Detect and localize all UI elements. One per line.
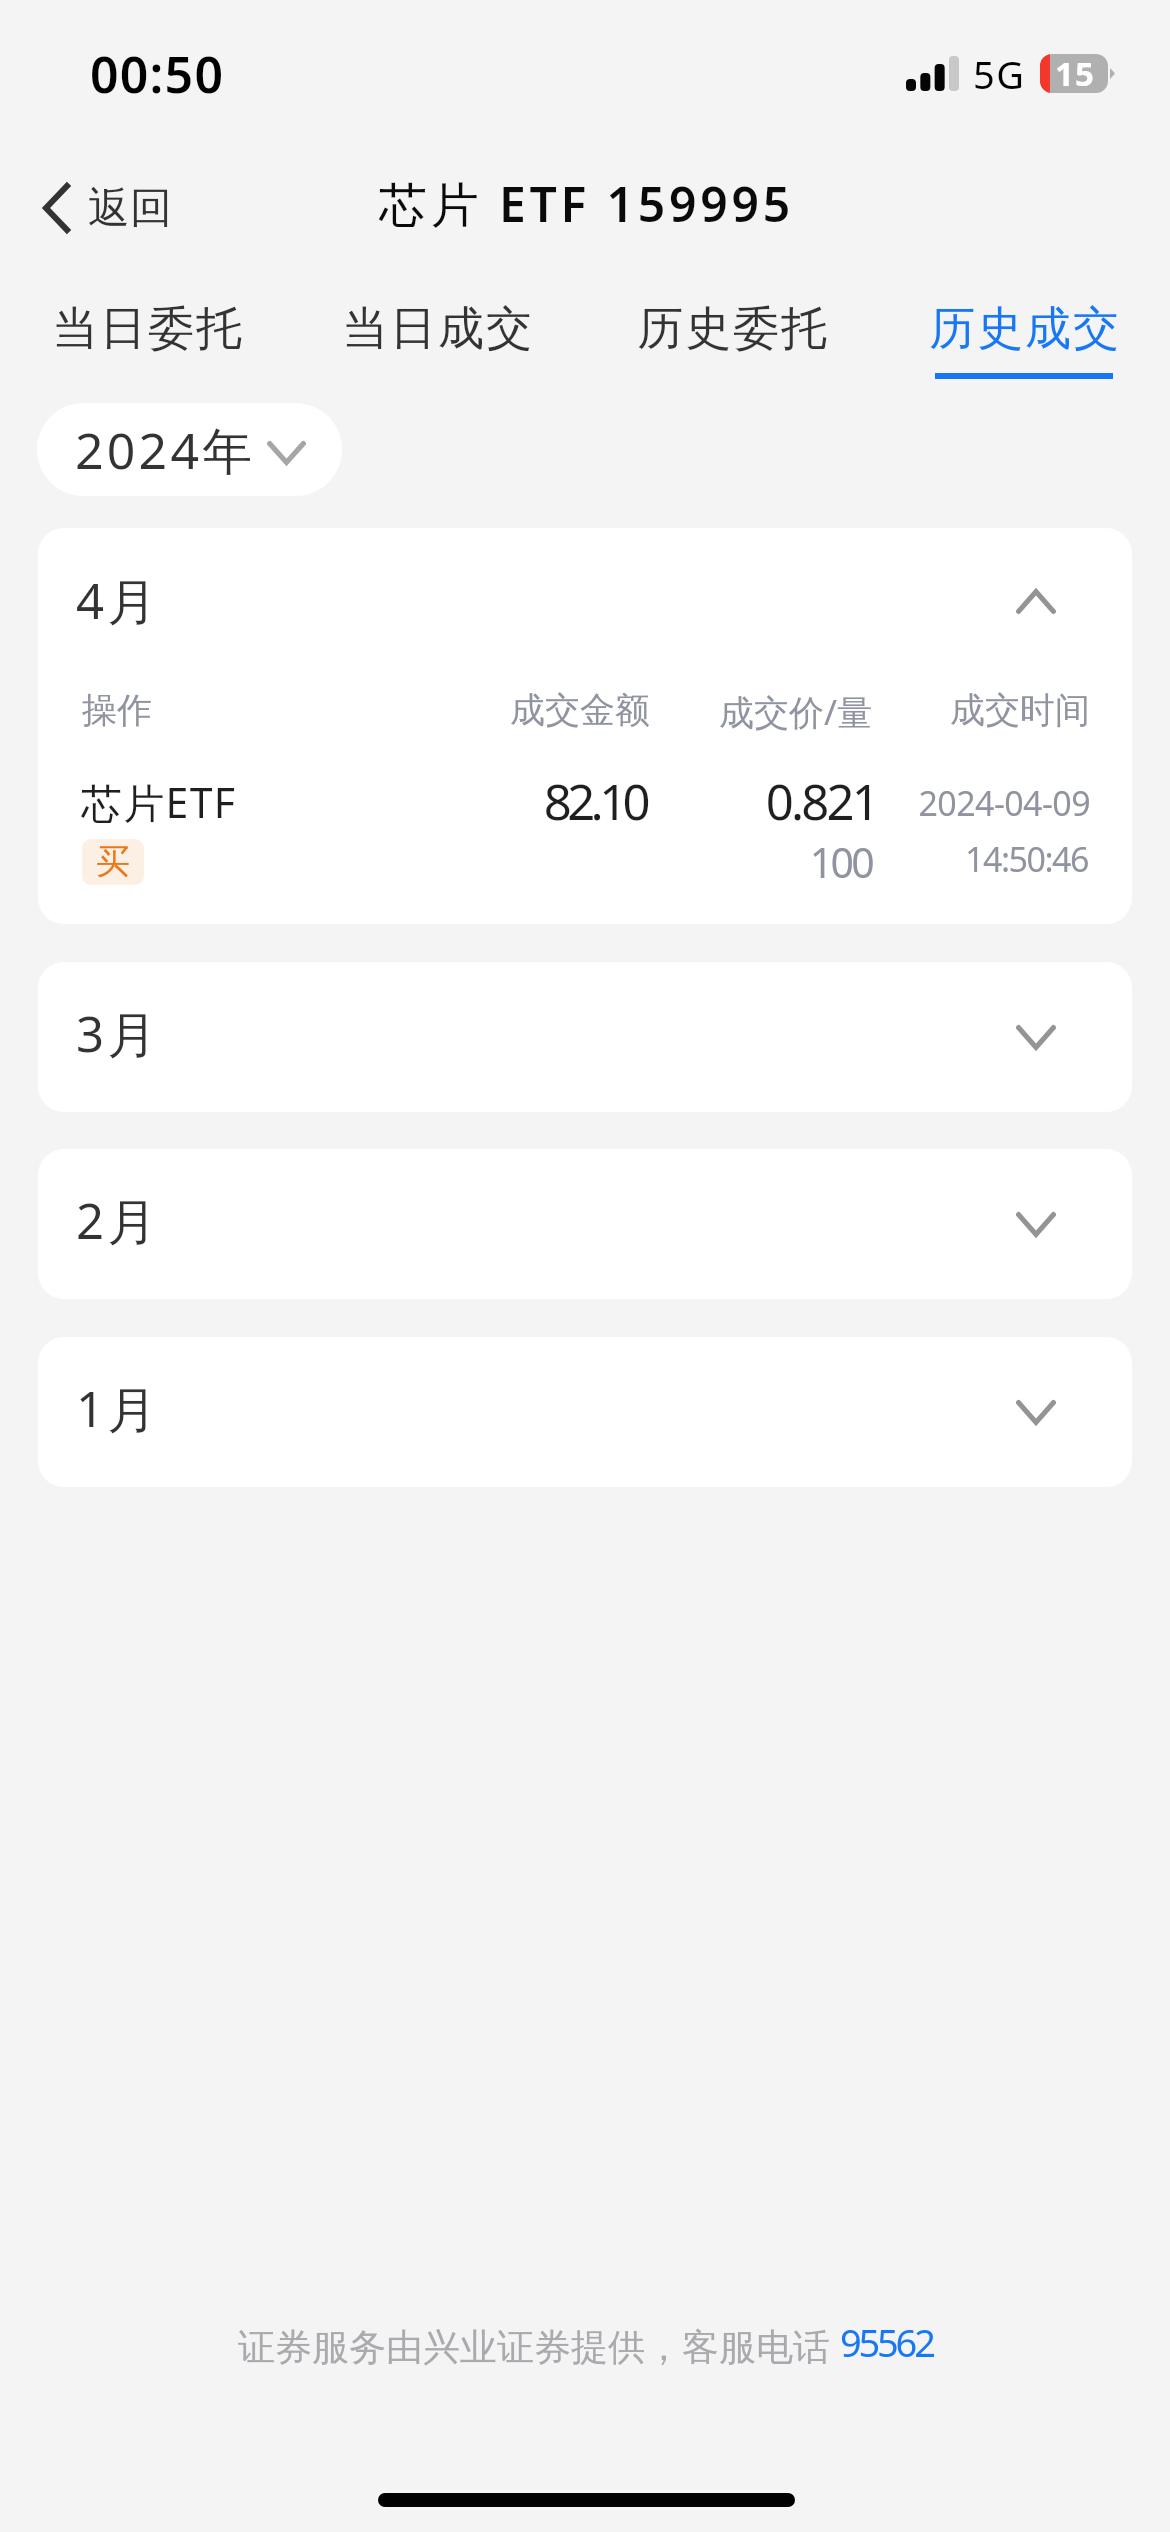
staticText: 15 <box>1055 51 1095 90</box>
staticText: 成交价/量 <box>652 688 872 736</box>
staticText: 1月 <box>76 1375 161 1442</box>
other: Back <box>43 183 70 233</box>
staticText: 14:50:46 <box>868 836 1088 882</box>
staticText: 历史成交 <box>928 300 1120 358</box>
other: Expand 1月 <box>1016 1400 1056 1425</box>
staticText: 成交金额 <box>370 688 650 732</box>
staticText: 操作 <box>82 688 152 732</box>
button[interactable]: 95562 <box>840 2316 933 2368</box>
button[interactable]: 当日委托 <box>1 276 293 386</box>
staticText: 当日成交 <box>341 300 533 358</box>
other: Cellular signal <box>906 56 958 91</box>
other: Expand 2月 <box>1016 1212 1056 1237</box>
button[interactable]: 2月 <box>38 1149 1132 1299</box>
button[interactable]: 芯片ETF <box>38 748 1132 924</box>
staticText: 5G <box>973 48 1026 100</box>
button[interactable]: 4月 <box>38 528 1132 656</box>
button[interactable]: 1月 <box>38 1337 1132 1487</box>
button[interactable]: Back <box>24 160 198 256</box>
staticText: 当日委托 <box>51 300 243 358</box>
staticText: 返回 <box>88 182 172 235</box>
staticText: 2024-04-09 <box>870 780 1090 826</box>
staticText: 0.821 <box>657 768 877 835</box>
other: Expand 3月 <box>1016 1025 1056 1050</box>
staticText: 芯片ETF <box>81 774 237 830</box>
button[interactable]: 历史委托 <box>586 276 878 386</box>
staticText: 芯片 ETF 159995 <box>379 171 795 237</box>
other: Collapse April <box>1016 589 1056 614</box>
staticText: 证券服务由兴业证券提供，客服电话 <box>238 2320 840 2371</box>
staticText: 82.10 <box>366 768 646 835</box>
staticText: 历史委托 <box>636 300 828 358</box>
button[interactable]: 历史成交 <box>878 276 1170 386</box>
button[interactable]: 3月 <box>38 962 1132 1112</box>
staticText: 4月 <box>76 567 161 634</box>
staticText: 买 <box>96 840 130 883</box>
button[interactable]: 当日成交 <box>291 276 583 386</box>
button[interactable]: 2024年 <box>37 403 342 496</box>
staticText: 成交时间 <box>870 688 1090 732</box>
other: Battery 15 percent <box>1040 54 1115 93</box>
staticText: 3月 <box>76 1000 161 1067</box>
staticText: 2月 <box>76 1187 161 1254</box>
staticText: 100 <box>652 834 872 890</box>
staticText: 2024年 <box>75 416 256 484</box>
staticText: 00:50 <box>90 40 225 108</box>
